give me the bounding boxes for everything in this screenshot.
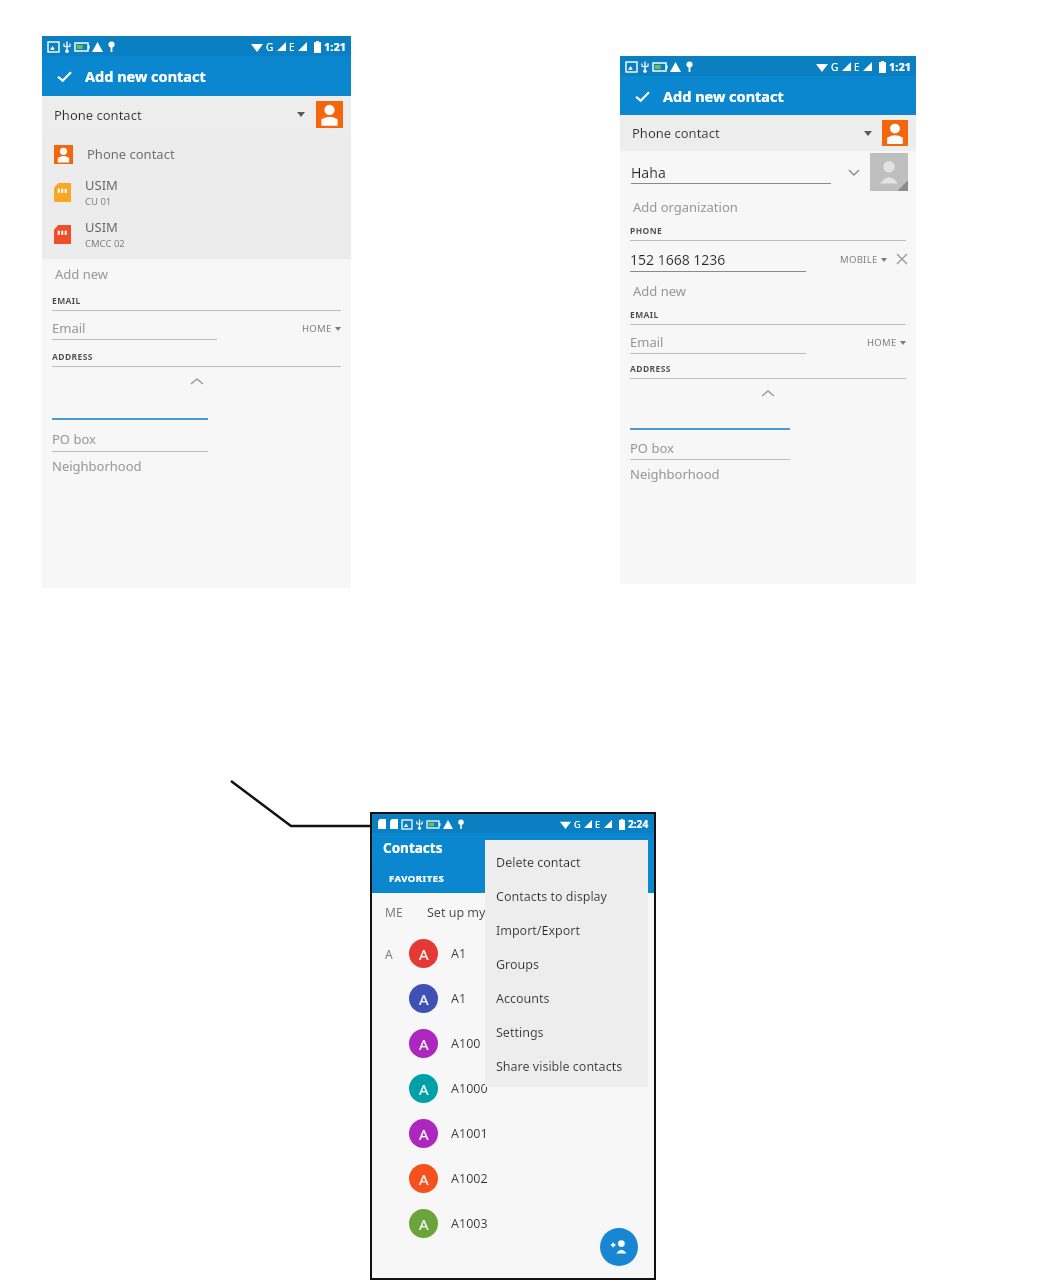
staticText: A1000 — [451, 1080, 488, 1097]
staticText: Accounts — [496, 990, 550, 1007]
staticText: Settings — [496, 1024, 544, 1041]
staticText: Add new — [55, 265, 109, 283]
staticText: A1 — [451, 990, 467, 1007]
staticText: ADDRESS — [52, 351, 93, 363]
staticText: Haha — [631, 163, 666, 182]
staticText: Neighborhood — [52, 457, 142, 475]
staticText: G — [574, 818, 581, 831]
staticText: G — [831, 60, 839, 74]
staticText: MOBILE — [840, 253, 878, 266]
button[interactable]: Account avatar — [882, 120, 908, 146]
button[interactable]: A — [372, 1066, 654, 1111]
staticText: HOME — [867, 336, 897, 349]
button[interactable]: ME — [372, 893, 654, 931]
button[interactable]: HOME — [302, 322, 341, 335]
staticText: Add organization — [633, 198, 738, 216]
staticText: ME — [385, 904, 403, 920]
staticText: ADDRESS — [630, 363, 671, 375]
button[interactable]: Delete contact — [485, 845, 648, 879]
staticText: CU 01 — [85, 195, 112, 208]
staticText: Email — [52, 319, 86, 337]
staticText: A — [419, 989, 429, 1009]
staticText: PO box — [52, 430, 96, 448]
staticText: FAVORITES — [389, 872, 445, 885]
staticText: USIM — [85, 218, 118, 236]
staticText: 1:21 — [324, 39, 346, 54]
button[interactable]: Groups — [485, 947, 648, 981]
button[interactable]: Phone contact — [42, 96, 351, 133]
button[interactable]: Add contact — [600, 1228, 638, 1266]
staticText: Groups — [496, 956, 539, 973]
button[interactable]: Add organization — [620, 193, 916, 221]
staticText: EMAIL — [630, 309, 659, 321]
staticText: A1001 — [451, 1125, 488, 1142]
staticText: Phone contact — [87, 145, 175, 163]
button[interactable]: Import/Export — [485, 913, 648, 947]
staticText: Set up my profile — [427, 904, 527, 921]
button[interactable]: MOBILE — [840, 253, 887, 266]
staticText: A — [385, 946, 393, 962]
button[interactable]: Add new — [42, 259, 351, 289]
staticText: PO box — [630, 439, 674, 457]
staticText: A — [419, 1169, 429, 1189]
staticText: 2:24 — [628, 817, 649, 831]
staticText: A — [419, 1079, 429, 1099]
staticText: A100 — [451, 1035, 481, 1052]
staticText: A — [419, 944, 429, 964]
staticText: Contacts — [383, 839, 443, 857]
staticText: HOME — [302, 322, 332, 335]
button[interactable]: A — [372, 931, 654, 976]
staticText: Delete contact — [496, 854, 581, 871]
button[interactable]: A — [372, 1111, 654, 1156]
staticText: A1 — [451, 945, 467, 962]
staticText: A — [419, 1214, 429, 1234]
button[interactable]: A — [372, 976, 654, 1021]
staticText: CMCC 02 — [85, 237, 125, 250]
staticText: Contacts to display — [496, 888, 607, 905]
button[interactable]: HOME — [867, 336, 906, 349]
staticText: E — [854, 60, 860, 74]
staticText: G — [266, 40, 274, 54]
staticText: Import/Export — [496, 922, 580, 939]
staticText: Phone contact — [54, 106, 142, 124]
staticText: E — [595, 818, 601, 831]
button[interactable]: Phone contact — [42, 137, 351, 171]
button[interactable]: Save contact — [56, 68, 72, 84]
staticText: Add new — [633, 282, 687, 300]
button[interactable]: Contacts to display — [485, 879, 648, 913]
staticText: Neighborhood — [630, 465, 720, 483]
staticText: Email — [630, 333, 664, 351]
staticText: 1:21 — [889, 59, 911, 74]
button[interactable]: Save contact — [620, 76, 916, 115]
button[interactable]: Add new — [620, 277, 916, 305]
button[interactable]: FAVORITES — [389, 872, 445, 885]
button[interactable]: USIM — [42, 171, 351, 213]
staticText: Add new contact — [85, 66, 206, 86]
staticText: USIM — [85, 176, 118, 194]
button[interactable]: Account avatar — [316, 101, 343, 128]
staticText: A1002 — [451, 1170, 488, 1187]
button[interactable]: Save contact — [634, 88, 650, 104]
button[interactable]: Save contact — [42, 56, 351, 96]
button[interactable]: Add contact photo — [870, 153, 908, 191]
button[interactable]: Contacts — [372, 833, 654, 863]
staticText: E — [289, 40, 295, 54]
button[interactable]: A — [372, 1201, 654, 1246]
button[interactable]: USIM — [42, 213, 351, 255]
staticText: A — [419, 1034, 429, 1054]
button[interactable]: Phone contact — [620, 115, 916, 151]
staticText: 152 1668 1236 — [630, 250, 726, 269]
button[interactable]: A — [372, 1156, 654, 1201]
staticText: A1003 — [451, 1215, 488, 1232]
staticText: EMAIL — [52, 295, 81, 307]
staticText: Phone contact — [632, 124, 720, 142]
button[interactable]: Settings — [485, 1015, 648, 1049]
button[interactable]: Remove phone number — [895, 252, 909, 266]
staticText: Add new contact — [663, 86, 784, 106]
staticText: Share visible contacts — [496, 1058, 623, 1075]
button[interactable]: A — [372, 1021, 654, 1066]
staticText: PHONE — [630, 225, 663, 237]
button[interactable]: Accounts — [485, 981, 648, 1015]
button[interactable]: Share visible contacts — [485, 1049, 648, 1083]
staticText: A — [419, 1124, 429, 1144]
